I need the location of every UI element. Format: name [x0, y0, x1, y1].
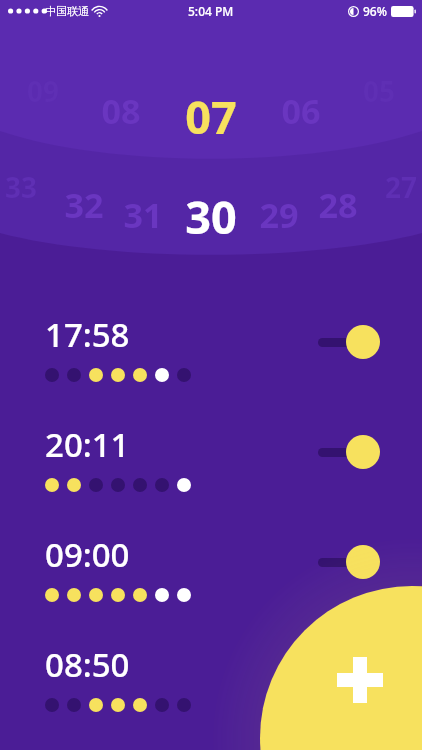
button[interactable]: Toggle alarm 08:50	[314, 654, 380, 690]
button[interactable]: 31	[0, 191, 422, 238]
button[interactable]: Toggle alarm 20:11	[314, 434, 380, 470]
staticText: 5:04 PM	[188, 3, 234, 19]
button[interactable]: 08:50	[0, 630, 422, 740]
staticText: 08	[101, 87, 141, 134]
staticText: 28	[318, 181, 358, 228]
button[interactable]: 08	[0, 87, 422, 134]
staticText: 中国联通	[45, 4, 89, 18]
staticText: 31	[123, 191, 163, 238]
staticText: 17:58	[45, 312, 130, 357]
staticText: 27	[385, 168, 417, 206]
staticText: 09:00	[45, 532, 130, 577]
button[interactable]: 07:30	[0, 740, 422, 750]
button[interactable]: 06	[0, 87, 422, 134]
button[interactable]: 28	[0, 181, 422, 228]
button[interactable]: 17:58	[0, 300, 422, 410]
staticText: 32	[64, 181, 104, 228]
staticText: 29	[259, 191, 299, 238]
button[interactable]: Add alarm	[0, 0, 422, 750]
staticText: 96%	[363, 3, 387, 19]
button[interactable]: Toggle alarm 09:00	[314, 544, 380, 580]
button[interactable]: 05	[0, 72, 422, 110]
button[interactable]: 32	[0, 181, 422, 228]
staticText: 30	[185, 186, 237, 247]
button[interactable]: 07	[0, 86, 422, 147]
staticText: 06	[281, 87, 321, 134]
button[interactable]: Toggle alarm 17:58	[314, 324, 380, 360]
button[interactable]: 33	[0, 168, 422, 206]
button[interactable]: 30	[0, 186, 422, 247]
button[interactable]: 09	[0, 72, 422, 110]
staticText: 07	[185, 86, 237, 147]
button[interactable]: 27	[0, 168, 422, 206]
button[interactable]: 20:11	[0, 410, 422, 520]
staticText: 33	[5, 168, 37, 206]
staticText: 20:11	[45, 422, 130, 467]
button[interactable]: 29	[0, 191, 422, 238]
button[interactable]: 09:00	[0, 520, 422, 630]
staticText: 08:50	[45, 642, 130, 687]
